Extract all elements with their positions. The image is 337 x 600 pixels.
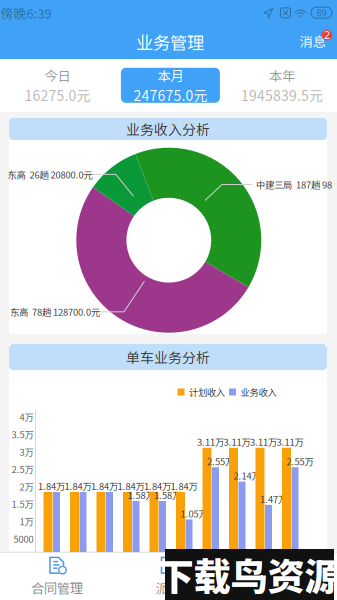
staticText: 下载鸟资源 xyxy=(156,547,337,600)
staticText: 2万 xyxy=(19,480,33,493)
staticText: 1.84万 xyxy=(91,479,118,493)
staticText: 东高 26趟 20800.0元 xyxy=(7,168,92,181)
staticText: 1.5万 xyxy=(11,497,33,510)
staticText: 1.84万 xyxy=(64,479,91,493)
staticText: 1.58万 xyxy=(127,488,154,502)
staticText: 3.11万 xyxy=(223,435,250,448)
staticText: 1.58万 xyxy=(154,488,181,502)
staticText: 5000 xyxy=(13,532,33,545)
staticText: 2 xyxy=(324,28,330,42)
staticText: 今日 xyxy=(44,65,70,85)
staticText: 16275.0元 xyxy=(24,85,90,105)
button[interactable]: 其他 xyxy=(226,555,336,599)
staticText: 2.5万 xyxy=(11,462,33,476)
staticText: 傍晚6:39 xyxy=(0,4,51,22)
staticText: 1万 xyxy=(19,514,33,528)
staticText: 1.84万 xyxy=(117,479,144,493)
staticText: 3.11万 xyxy=(276,435,303,448)
staticText: 中建三局 187趟 98 xyxy=(256,178,332,191)
button[interactable]: 合同管理 xyxy=(2,555,112,599)
staticText: 1.84万 xyxy=(144,479,171,493)
staticText: 89 xyxy=(316,6,326,19)
staticText: 247675.0元 xyxy=(133,85,207,105)
staticText: 1945839.5元 xyxy=(241,85,323,105)
staticText: 1.84万 xyxy=(38,479,65,493)
staticText: 1.05万 xyxy=(180,507,207,520)
staticText: 2.55万 xyxy=(207,454,234,468)
staticText: 本月 xyxy=(157,65,183,85)
staticText: 东高 78趟 128700.0元 xyxy=(10,305,100,318)
staticText: 2.14万 xyxy=(233,469,260,482)
staticText: 2.55万 xyxy=(286,454,313,468)
staticText: 3.5万 xyxy=(11,427,33,441)
staticText: 业务收入分析 xyxy=(126,119,210,139)
staticText: 派车 xyxy=(155,578,181,597)
staticText: 3万 xyxy=(19,445,33,458)
button[interactable]: 消息 xyxy=(292,26,332,56)
button[interactable]: 派车 xyxy=(113,555,223,599)
button[interactable]: 本月 xyxy=(121,68,220,103)
staticText: 合同管理 xyxy=(31,578,83,597)
staticText: 1.84万 xyxy=(170,479,197,493)
staticText: 3.11万 xyxy=(250,435,277,448)
button[interactable]: 今日 xyxy=(8,68,107,103)
staticText: 4万 xyxy=(19,410,33,423)
staticText: 计划收入 xyxy=(189,385,225,399)
staticText: 本年 xyxy=(269,65,295,85)
staticText: 消息 xyxy=(299,31,325,51)
staticText: 1.47万 xyxy=(260,492,287,506)
staticText: 其他 xyxy=(268,578,294,597)
button[interactable]: Back xyxy=(2,26,46,60)
staticText: 业务收入 xyxy=(240,385,276,399)
button[interactable]: 本年 xyxy=(232,68,331,103)
staticText: 业务管理 xyxy=(136,29,204,55)
staticText: 3.11万 xyxy=(197,435,224,448)
staticText: 单车业务分析 xyxy=(126,347,210,367)
